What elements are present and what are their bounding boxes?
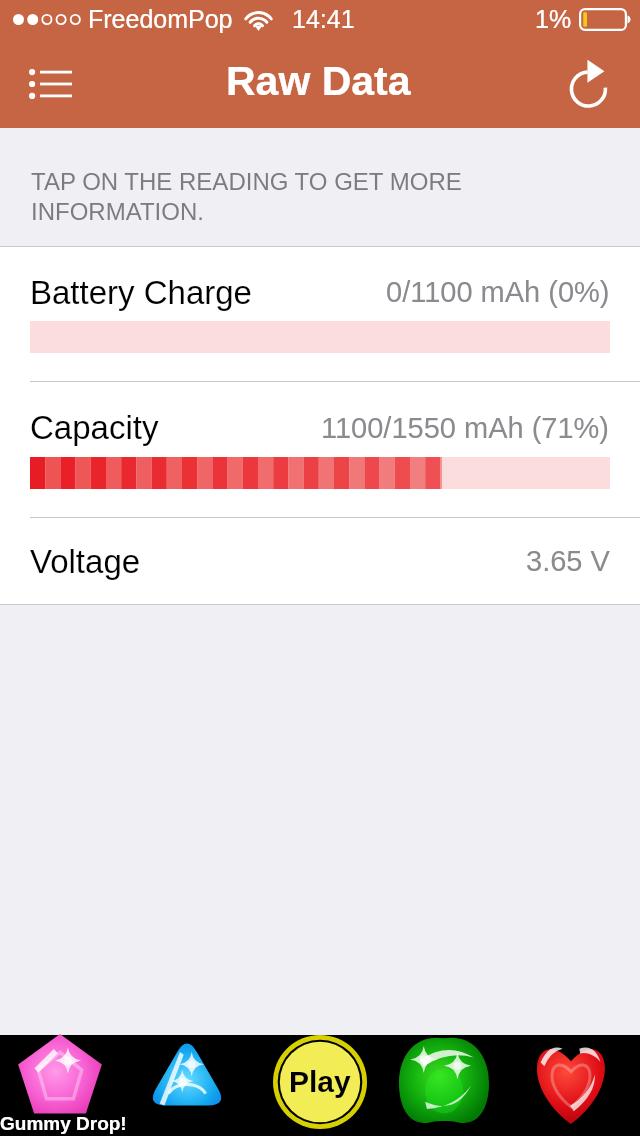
staticText: Gummy Drop! [0,1113,127,1134]
staticText: TAP ON THE READING TO GET MORE INFORMATI… [31,168,473,225]
button[interactable]: Gummy Drop! advertisement [0,1035,640,1136]
staticText: 1100/1550 mAh (71%) [321,412,610,444]
staticText: 1% [535,5,572,33]
button[interactable]: Battery Charge [0,247,640,381]
button[interactable]: Voltage [0,518,640,604]
staticText: Capacity [30,409,159,446]
staticText: Raw Data [226,58,411,104]
button[interactable]: Menu [15,40,91,128]
staticText: 0/1100 mAh (0%) [386,276,610,308]
staticText: 3.65 V [526,545,610,577]
staticText: FreedomPop [88,5,233,33]
button[interactable]: Refresh [541,40,617,128]
button[interactable]: Capacity [0,382,640,517]
staticText: Battery Charge [30,274,252,311]
staticText: Play [289,1065,351,1099]
staticText: 14:41 [292,5,355,33]
staticText: Voltage [30,543,141,580]
